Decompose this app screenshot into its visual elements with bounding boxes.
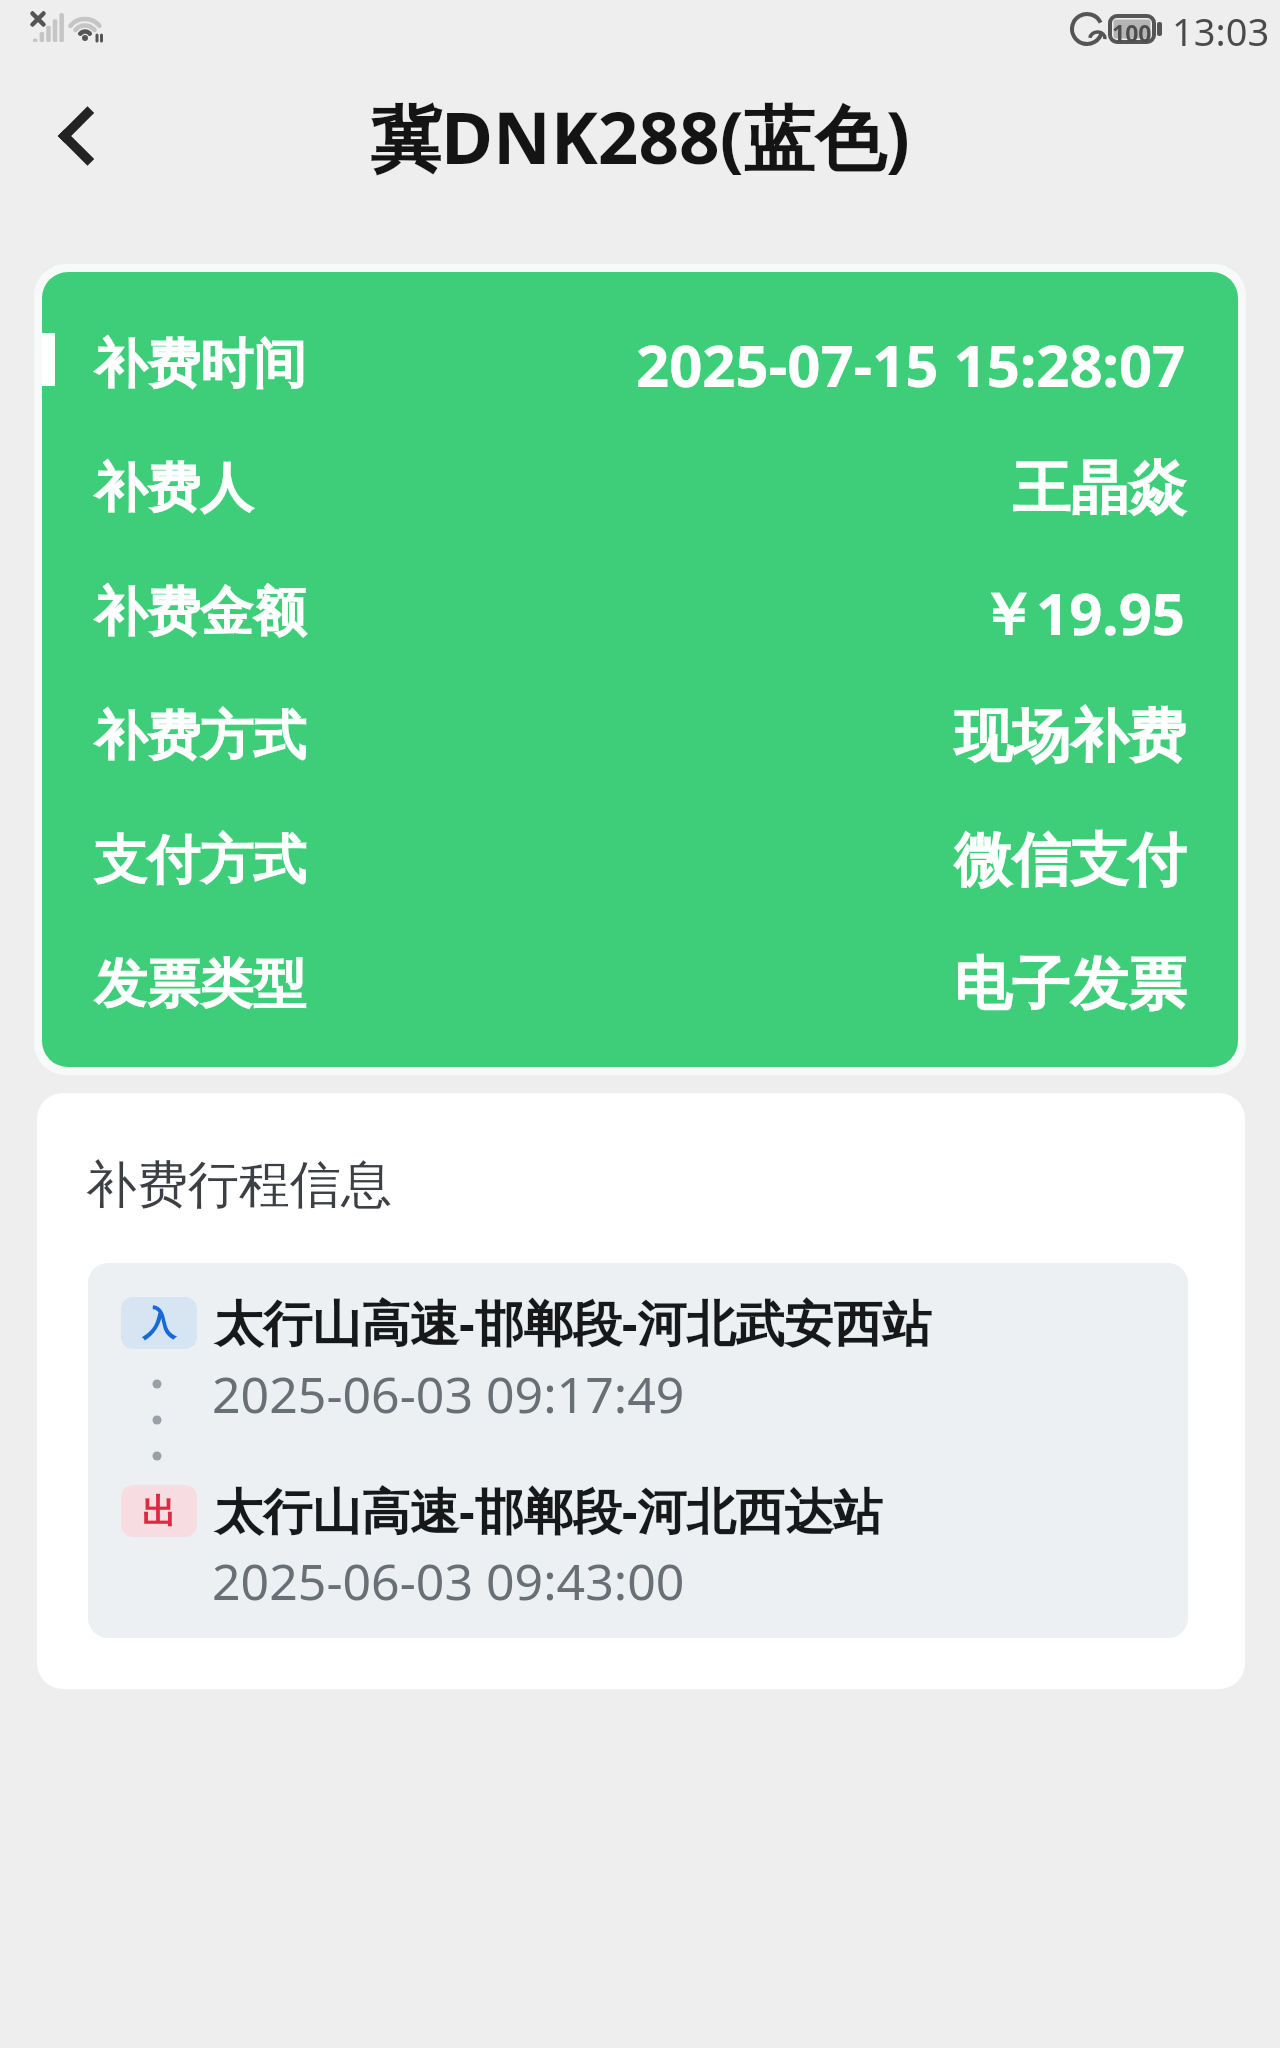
staticText: 现场补费 [954, 700, 1186, 773]
staticText: 冀DNK288(蓝色) [370, 88, 910, 185]
staticText: 补费人 [94, 455, 253, 522]
button[interactable]: 补费时间 [42, 322, 1238, 406]
button[interactable]: 补费方式 [42, 694, 1238, 778]
staticText: 电子发票 [954, 948, 1186, 1021]
button[interactable]: 发票类型 [42, 942, 1238, 1026]
staticText: 补费金额 [94, 579, 306, 646]
staticText: 支付方式 [94, 827, 306, 894]
button[interactable]: 补费人 [42, 446, 1238, 530]
staticText: 100 [1112, 17, 1152, 48]
staticText: 太行山高速-邯郸段-河北西达站 [214, 1477, 883, 1544]
staticText: 太行山高速-邯郸段-河北武安西站 [214, 1289, 932, 1356]
staticText: 2025-06-03 09:17:49 [212, 1360, 685, 1428]
staticText: 微信支付 [954, 824, 1186, 897]
staticText: 发票类型 [94, 951, 306, 1018]
staticText: 出 [142, 1490, 176, 1533]
button[interactable]: Back [34, 92, 134, 192]
staticText: 13:03 [1172, 5, 1270, 57]
staticText: 2025-07-15 15:28:07 [636, 325, 1186, 404]
staticText: 补费方式 [94, 703, 306, 770]
staticText: 王晶焱 [1012, 452, 1186, 525]
staticText: 补费行程信息 [86, 1153, 392, 1217]
staticText: 2025-06-03 09:43:00 [212, 1547, 685, 1615]
button[interactable]: 入 [88, 1263, 1188, 1638]
staticText: 入 [142, 1302, 176, 1345]
staticText: ￥19.95 [978, 573, 1186, 652]
button[interactable]: 补费金额 [42, 570, 1238, 654]
staticText: 补费时间 [94, 331, 306, 398]
button[interactable]: 支付方式 [42, 818, 1238, 902]
